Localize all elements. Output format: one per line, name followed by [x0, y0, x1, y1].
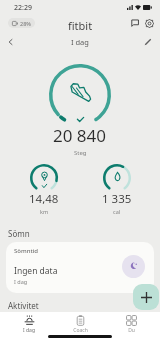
staticText: Ingen data: [14, 265, 58, 277]
staticText: cal: [113, 208, 121, 215]
staticText: Sömn: [8, 228, 30, 239]
staticText: fitbit: [68, 18, 93, 33]
staticText: Steg: [74, 149, 87, 157]
button[interactable]: Sömntid: [6, 242, 154, 293]
button[interactable]: Settings: [142, 16, 156, 30]
staticText: km: [40, 208, 49, 215]
button[interactable]: I dag: [7, 315, 51, 334]
staticText: 14,48: [29, 191, 59, 207]
button[interactable]: Coach: [58, 315, 102, 334]
staticText: Coach: [73, 327, 88, 334]
staticText: I dag: [71, 37, 89, 47]
staticText: Du: [128, 327, 135, 334]
staticText: 28%: [20, 20, 31, 27]
button[interactable]: Edit: [141, 35, 155, 49]
staticText: I dag: [23, 327, 35, 334]
button[interactable]: Add: [133, 284, 159, 310]
staticText: I dag: [14, 278, 28, 285]
staticText: Aktivitet: [8, 300, 39, 311]
button[interactable]: 28%: [8, 18, 35, 28]
button[interactable]: Messages: [128, 16, 142, 30]
staticText: 1 335: [102, 191, 132, 207]
button[interactable]: Du: [109, 315, 153, 334]
staticText: Sömntid: [14, 247, 39, 255]
staticText: 22:29: [14, 3, 32, 13]
button[interactable]: Back: [3, 35, 17, 49]
staticText: 20 840: [53, 124, 107, 147]
